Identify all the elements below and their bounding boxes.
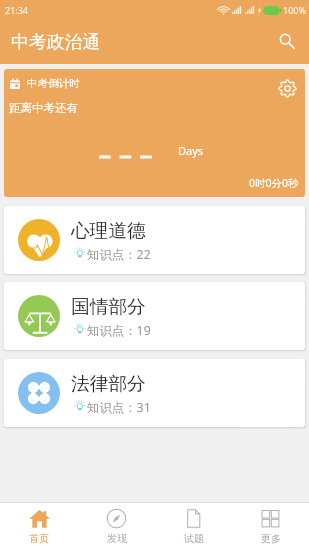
staticText: 知识点：31 bbox=[87, 399, 151, 416]
button[interactable]: 发现 bbox=[78, 503, 155, 550]
button[interactable]: 法律部分 bbox=[4, 359, 305, 427]
staticText: 0时0分0秒 bbox=[249, 176, 299, 190]
staticText: 更多 bbox=[261, 532, 281, 545]
button[interactable]: 首页 bbox=[0, 503, 78, 550]
staticText: Days bbox=[178, 143, 204, 158]
staticText: 试题 bbox=[184, 532, 204, 545]
staticText: 知识点：22 bbox=[87, 246, 151, 263]
staticText: 心理道德 bbox=[71, 219, 146, 243]
staticText: 距离中考还有 bbox=[9, 101, 78, 115]
button[interactable]: Search bbox=[271, 25, 303, 57]
staticText: 21:34 bbox=[5, 4, 29, 16]
button[interactable]: 中考倒计时 bbox=[4, 69, 305, 197]
button[interactable]: 国情部分 bbox=[4, 282, 305, 350]
button[interactable]: 更多 bbox=[232, 503, 309, 550]
button[interactable]: 心理道德 bbox=[4, 206, 305, 274]
button[interactable]: 试题 bbox=[155, 503, 232, 550]
staticText: 中考政治通 bbox=[11, 31, 100, 53]
staticText: 100% bbox=[283, 4, 306, 16]
staticText: 法律部分 bbox=[71, 372, 146, 396]
staticText: 首页 bbox=[29, 532, 49, 545]
staticText: 知识点：19 bbox=[87, 322, 151, 339]
staticText: 中考倒计时 bbox=[27, 77, 80, 90]
staticText: 发现 bbox=[107, 532, 127, 545]
button[interactable]: Settings bbox=[275, 76, 299, 100]
staticText: 国情部分 bbox=[71, 295, 146, 319]
